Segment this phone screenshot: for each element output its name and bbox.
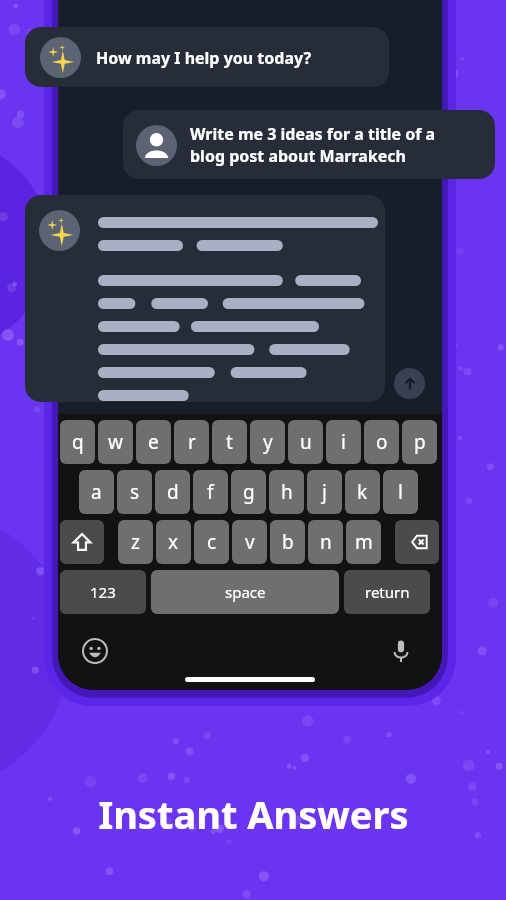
staticText: d: [167, 479, 179, 505]
button[interactable]: y: [250, 420, 285, 464]
staticText: How may I help you today?: [96, 47, 312, 69]
staticText: g: [243, 479, 255, 505]
button[interactable]: Emoji: [80, 636, 110, 666]
staticText: a: [91, 479, 102, 505]
button[interactable]: v: [232, 520, 267, 564]
button[interactable]: d: [155, 470, 190, 514]
button[interactable]: Send: [394, 368, 425, 399]
staticText: m: [355, 529, 373, 555]
button[interactable]: How may I help you today?: [25, 27, 389, 87]
staticText: f: [207, 479, 214, 505]
button[interactable]: 123: [60, 570, 146, 614]
staticText: l: [398, 479, 403, 505]
button[interactable]: c: [194, 520, 229, 564]
staticText: k: [357, 479, 368, 505]
button[interactable]: g: [231, 470, 266, 514]
staticText: p: [414, 429, 426, 455]
staticText: t: [226, 429, 233, 455]
staticText: i: [341, 429, 346, 455]
button[interactable]: b: [270, 520, 305, 564]
staticText: Instant Answers: [98, 788, 409, 840]
staticText: q: [72, 429, 84, 455]
button[interactable]: p: [402, 420, 437, 464]
button[interactable]: e: [136, 420, 171, 464]
staticText: space: [225, 582, 266, 602]
staticText: c: [207, 529, 217, 555]
button[interactable]: r: [174, 420, 209, 464]
staticText: x: [168, 529, 179, 555]
button[interactable]: Voice input: [386, 636, 416, 666]
button[interactable]: return: [344, 570, 430, 614]
staticText: o: [376, 429, 388, 455]
staticText: u: [300, 429, 312, 455]
staticText: h: [281, 479, 293, 505]
button[interactable]: n: [308, 520, 343, 564]
staticText: s: [130, 479, 140, 505]
button[interactable]: q: [60, 420, 95, 464]
button[interactable]: Write me 3 ideas for a title of a blog p…: [123, 110, 495, 179]
staticText: b: [282, 529, 294, 555]
staticText: z: [131, 529, 140, 555]
button[interactable]: j: [307, 470, 342, 514]
button[interactable]: Shift: [60, 520, 104, 564]
button[interactable]: t: [212, 420, 247, 464]
staticText: n: [320, 529, 332, 555]
button[interactable]: s: [117, 470, 152, 514]
button[interactable]: z: [118, 520, 153, 564]
staticText: Write me 3 ideas for a title of a blog p…: [190, 123, 436, 167]
staticText: v: [245, 529, 255, 555]
button[interactable]: Backspace: [395, 520, 439, 564]
button[interactable]: x: [156, 520, 191, 564]
button[interactable]: o: [364, 420, 399, 464]
button[interactable]: k: [345, 470, 380, 514]
staticText: 123: [90, 582, 116, 602]
button[interactable]: space: [151, 570, 339, 614]
staticText: return: [365, 582, 410, 602]
button[interactable]: a: [79, 470, 114, 514]
button[interactable]: m: [346, 520, 381, 564]
button[interactable]: w: [98, 420, 133, 464]
button[interactable]: l: [383, 470, 418, 514]
button[interactable]: f: [193, 470, 228, 514]
staticText: y: [263, 429, 273, 455]
button[interactable]: [25, 195, 385, 402]
button[interactable]: i: [326, 420, 361, 464]
button[interactable]: u: [288, 420, 323, 464]
button[interactable]: h: [269, 470, 304, 514]
staticText: e: [148, 429, 159, 455]
staticText: r: [188, 429, 196, 455]
staticText: j: [322, 479, 327, 505]
staticText: w: [108, 429, 123, 455]
